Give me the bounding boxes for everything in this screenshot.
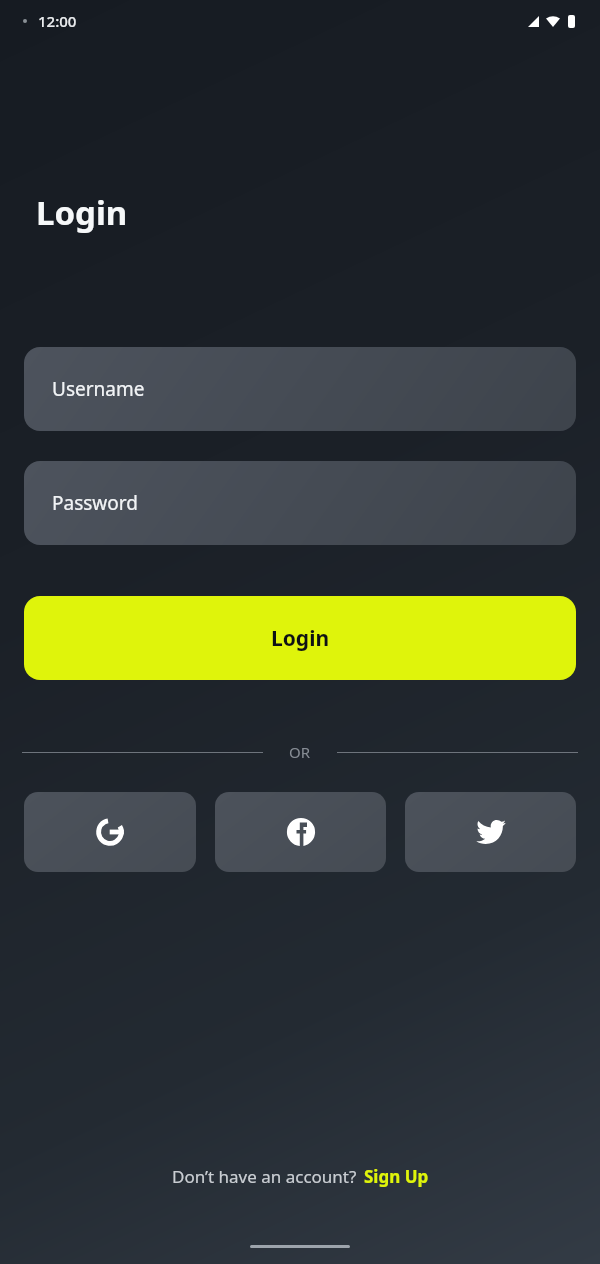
button[interactable]: Login <box>24 596 576 680</box>
staticText: 12:00 <box>38 11 77 31</box>
staticText: Username <box>52 376 145 402</box>
button[interactable]: Sign in with Google <box>24 792 196 872</box>
staticText: Login <box>271 624 330 653</box>
staticText: Login <box>36 190 128 235</box>
staticText: Password <box>52 490 138 516</box>
button[interactable]: Sign in with Facebook <box>215 792 386 872</box>
button[interactable]: Username <box>24 347 576 431</box>
staticText: Sign Up <box>364 1165 429 1188</box>
button[interactable]: Sign in with Twitter <box>405 792 576 872</box>
staticText: Don’t have an account? <box>172 1165 357 1188</box>
staticText: OR <box>289 742 311 762</box>
button[interactable]: Don’t have an account? <box>164 1161 437 1192</box>
button[interactable]: Password <box>24 461 576 545</box>
